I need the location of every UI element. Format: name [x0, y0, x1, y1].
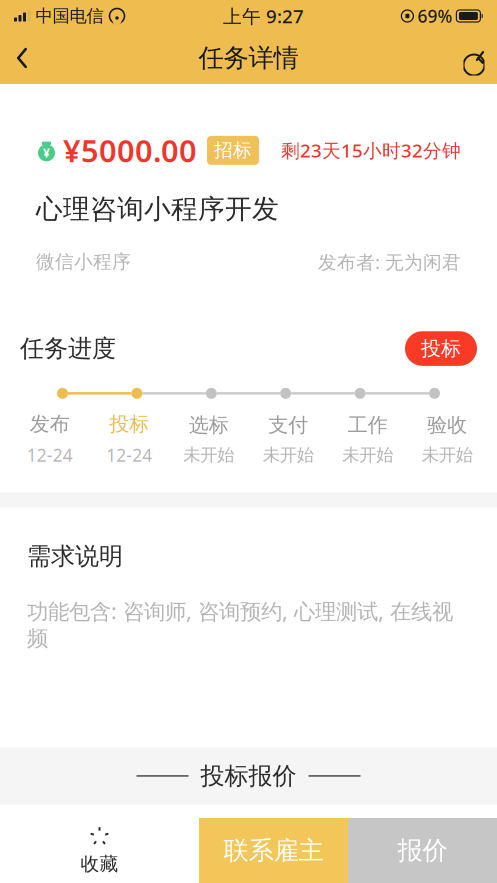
staticText: 投标	[421, 336, 461, 361]
staticText: 功能包含: 咨询师, 咨询预约, 心理测试, 在线视频	[27, 597, 453, 651]
button[interactable]: 联系雇主	[199, 818, 348, 883]
staticText: 收藏	[80, 852, 118, 875]
staticText: 未开始	[342, 444, 393, 466]
staticText: 报价	[397, 835, 447, 866]
staticText: 投标报价	[200, 761, 296, 791]
button[interactable]: 返回	[0, 33, 44, 83]
staticText: 剩23天15小时32分钟	[281, 138, 461, 163]
staticText: 支付	[268, 413, 308, 437]
staticText: 12-24	[106, 443, 152, 466]
staticText: 联系雇主	[223, 835, 323, 866]
staticText: 发布者: 无为闲君	[318, 249, 461, 274]
button[interactable]: 分享	[451, 33, 497, 83]
staticText: 招标	[214, 139, 252, 162]
staticText: 需求说明	[27, 541, 123, 571]
staticText: ¥5000.00	[63, 130, 197, 171]
staticText: 未开始	[422, 444, 473, 466]
staticText: 福建省禹品网络科技有限公司	[68, 822, 380, 851]
staticText: 投标	[109, 412, 149, 436]
staticText: 未开始	[263, 444, 314, 466]
staticText: ¥	[43, 145, 50, 161]
staticText: 发布	[30, 412, 70, 436]
staticText: 验收	[427, 413, 467, 437]
button[interactable]: 收藏	[0, 818, 199, 883]
staticText: 工作	[348, 413, 388, 437]
staticText: 任务进度	[20, 334, 116, 363]
staticText: 任务详情	[198, 42, 298, 73]
staticText: 上午 9:27	[223, 4, 304, 28]
staticText: 69%	[417, 4, 452, 27]
staticText: 中国电信	[35, 5, 103, 27]
staticText: 选标	[189, 413, 229, 437]
staticText: 未开始	[183, 444, 234, 466]
button[interactable]: 投标	[405, 331, 477, 366]
button[interactable]: 福建省禹品网络科技有限公司	[0, 804, 497, 854]
staticText: 心理咨询小程序开发	[36, 193, 279, 225]
button[interactable]: 报价	[348, 818, 497, 883]
staticText: 微信小程序	[36, 250, 131, 273]
staticText: 12-24	[27, 443, 73, 466]
